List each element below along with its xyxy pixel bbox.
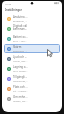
button[interactable]: Digitalt välbefinnande och föräldrakontr… [4,24,60,33]
button[interactable]: Batteri och ström [4,34,60,43]
staticText: Digitalt välbefinnande och föräldrakontr… [13,24,28,31]
button[interactable]: Tillgänglighet [4,74,60,83]
staticText: Tillgänglighet [13,75,28,79]
staticText: Plats och sekretess [13,85,28,89]
staticText: Lagring och minne [13,65,28,69]
staticText: 38 % använt – 40 GB [13,69,28,72]
staticText: ●▮▮ [54,2,59,5]
staticText: Ljud och vibration [13,55,28,59]
staticText: 82 % – cirka 9 tim [13,39,28,42]
button[interactable]: Om enheten [4,94,60,103]
staticText: 10:25 [5,2,12,5]
staticText: Modell, version [13,99,28,102]
staticText: Inställningar [5,8,22,12]
staticText: Anslutna enheter [13,15,28,19]
button[interactable]: Lagring och minne [4,64,60,73]
staticText: Skärm [13,45,22,49]
staticText: På – 3 appar har åtkomst [13,89,28,92]
staticText: Om enheten [13,95,28,99]
button[interactable]: Skärm [4,44,60,53]
staticText: Batteri och ström [13,35,28,39]
staticText: Volym, vibration [13,59,28,62]
other: Pointer [2,1,62,112]
button[interactable]: Ljud och vibration [4,54,60,63]
button[interactable]: Plats och sekretess [4,84,60,93]
staticText: Bluetooth, parkoppling [13,19,28,22]
staticText: Textstorlek, förstoring [13,79,28,82]
staticText: Bakgrund, viloläge, teckenstorlek [13,49,28,52]
button[interactable]: Anslutna enheter [4,14,60,23]
